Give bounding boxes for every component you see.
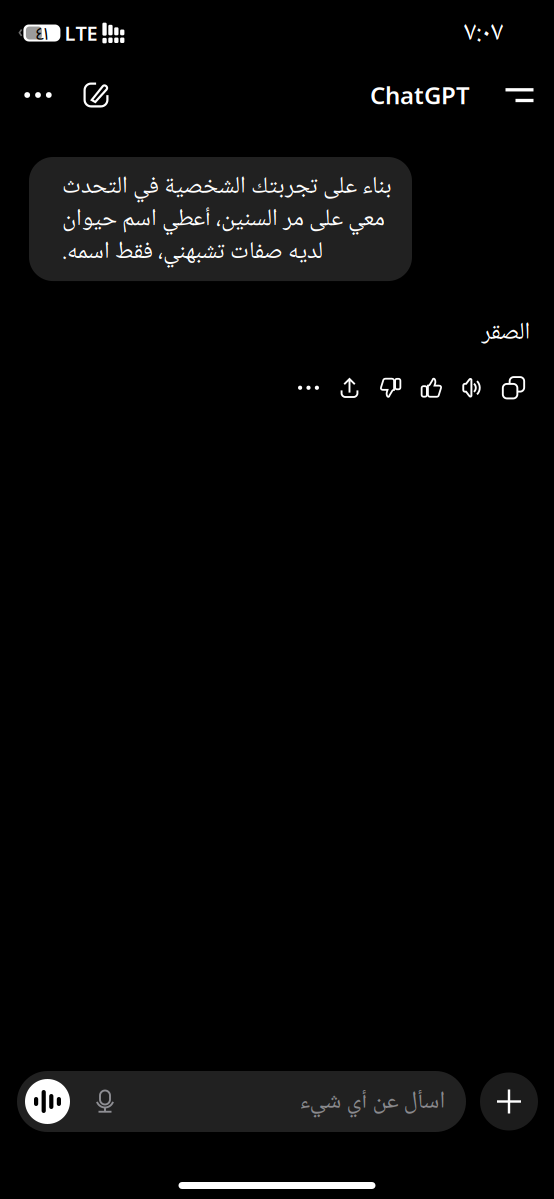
button[interactable]: ChatGPT: [370, 71, 495, 119]
button[interactable]: More: [288, 371, 329, 405]
button[interactable]: Copy: [493, 371, 534, 405]
button[interactable]: Good response: [411, 371, 452, 405]
staticText: ChatGPT: [370, 79, 470, 111]
button[interactable]: More options: [12, 71, 64, 119]
button[interactable]: Read aloud: [452, 371, 493, 405]
button[interactable]: Sidebar: [495, 71, 544, 119]
button[interactable]: Attach: [480, 1072, 538, 1130]
staticText: اسأل عن أي شيء: [299, 1085, 445, 1118]
staticText: ٤١: [35, 21, 48, 45]
button[interactable]: Dictate: [70, 1079, 140, 1124]
staticText: ٧:٠٧: [464, 14, 503, 52]
staticText: الصقر: [481, 316, 530, 349]
button[interactable]: Share: [329, 371, 370, 405]
button[interactable]: Bad response: [370, 371, 411, 405]
button[interactable]: New chat: [64, 71, 128, 119]
staticText: بناء على تجربتك الشخصية في التحدث معي عل…: [62, 170, 392, 268]
staticText: LTE: [64, 20, 97, 46]
button[interactable]: Voice mode: [25, 1079, 70, 1124]
